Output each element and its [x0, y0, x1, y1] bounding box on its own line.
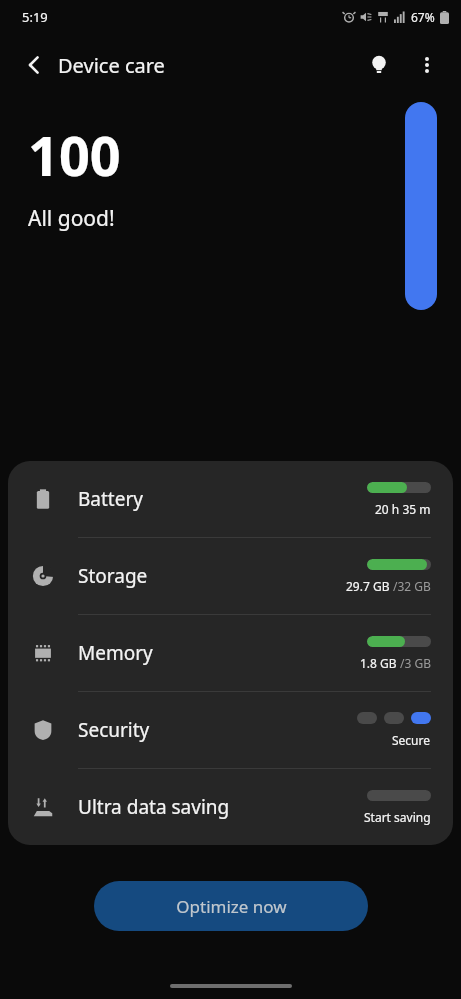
staticText: 1.8 GB — [360, 655, 400, 671]
staticText: /3 GB — [400, 655, 431, 671]
button[interactable]: Memory — [8, 615, 453, 691]
staticText: Optimize now — [176, 895, 287, 918]
button[interactable]: Security — [8, 692, 453, 768]
staticText: All good! — [28, 204, 115, 233]
staticText: 100 — [28, 118, 121, 192]
staticText: 67% — [411, 9, 435, 25]
staticText: Storage — [78, 563, 346, 589]
staticText: Device care — [58, 52, 165, 79]
staticText: Start saving — [364, 809, 431, 825]
staticText: 20 h 35 m — [375, 501, 431, 517]
staticText: Battery — [78, 486, 367, 512]
staticText: /32 GB — [393, 578, 431, 594]
button[interactable]: Back — [14, 45, 54, 85]
button[interactable]: Battery — [8, 461, 453, 537]
staticText: 5:19 — [22, 8, 48, 26]
button[interactable]: Storage — [8, 538, 453, 614]
button[interactable]: More options — [407, 45, 447, 85]
staticText: 29.7 GB — [346, 578, 393, 594]
button[interactable]: Optimize now — [94, 881, 368, 931]
staticText: Security — [78, 717, 357, 743]
button[interactable]: Ultra data saving — [8, 769, 453, 845]
staticText: Ultra data saving — [78, 794, 364, 820]
staticText: Secure — [392, 732, 431, 748]
staticText: Memory — [78, 640, 360, 666]
button[interactable]: Tips — [359, 45, 399, 85]
